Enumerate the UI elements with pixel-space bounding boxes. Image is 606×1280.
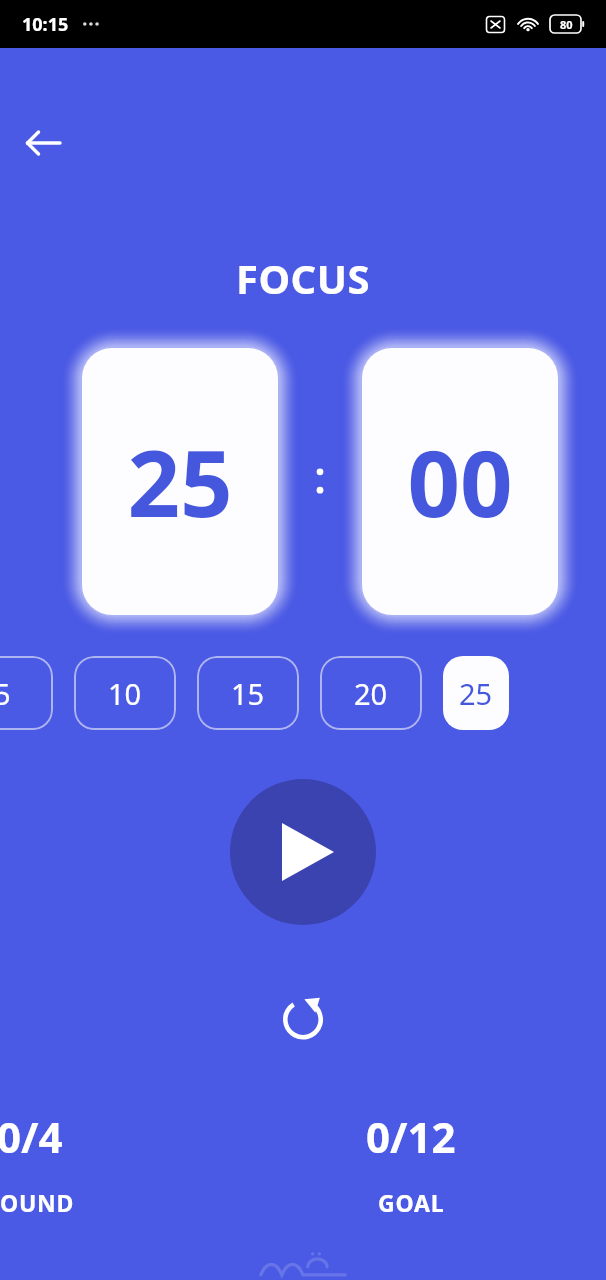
- staticText: GOAL: [378, 1187, 445, 1218]
- staticText: 00: [407, 419, 513, 544]
- button[interactable]: 0/12: [366, 1108, 456, 1218]
- button[interactable]: Start timer: [230, 779, 376, 925]
- button[interactable]: 5: [0, 656, 53, 730]
- staticText: ROUND: [0, 1187, 75, 1218]
- staticText: FOCUS: [236, 251, 371, 305]
- staticText: 0/12: [366, 1108, 456, 1165]
- staticText: 10: [108, 674, 142, 713]
- button[interactable]: 25: [82, 348, 278, 615]
- button[interactable]: 0/4: [0, 1108, 75, 1218]
- button[interactable]: Reset timer: [271, 986, 335, 1050]
- button[interactable]: Back: [18, 118, 68, 168]
- button[interactable]: 25: [443, 656, 509, 730]
- button[interactable]: 10: [74, 656, 176, 730]
- button[interactable]: 00: [362, 348, 558, 615]
- staticText: 25: [127, 419, 233, 544]
- staticText: 20: [354, 674, 388, 713]
- staticText: 0/4: [0, 1108, 63, 1165]
- button[interactable]: 15: [197, 656, 299, 730]
- button[interactable]: 20: [320, 656, 422, 730]
- staticText: 10:15: [22, 12, 69, 37]
- staticText: 15: [231, 674, 265, 713]
- staticText: 80: [560, 17, 573, 32]
- staticText: 25: [459, 674, 493, 713]
- staticText: 5: [0, 674, 11, 713]
